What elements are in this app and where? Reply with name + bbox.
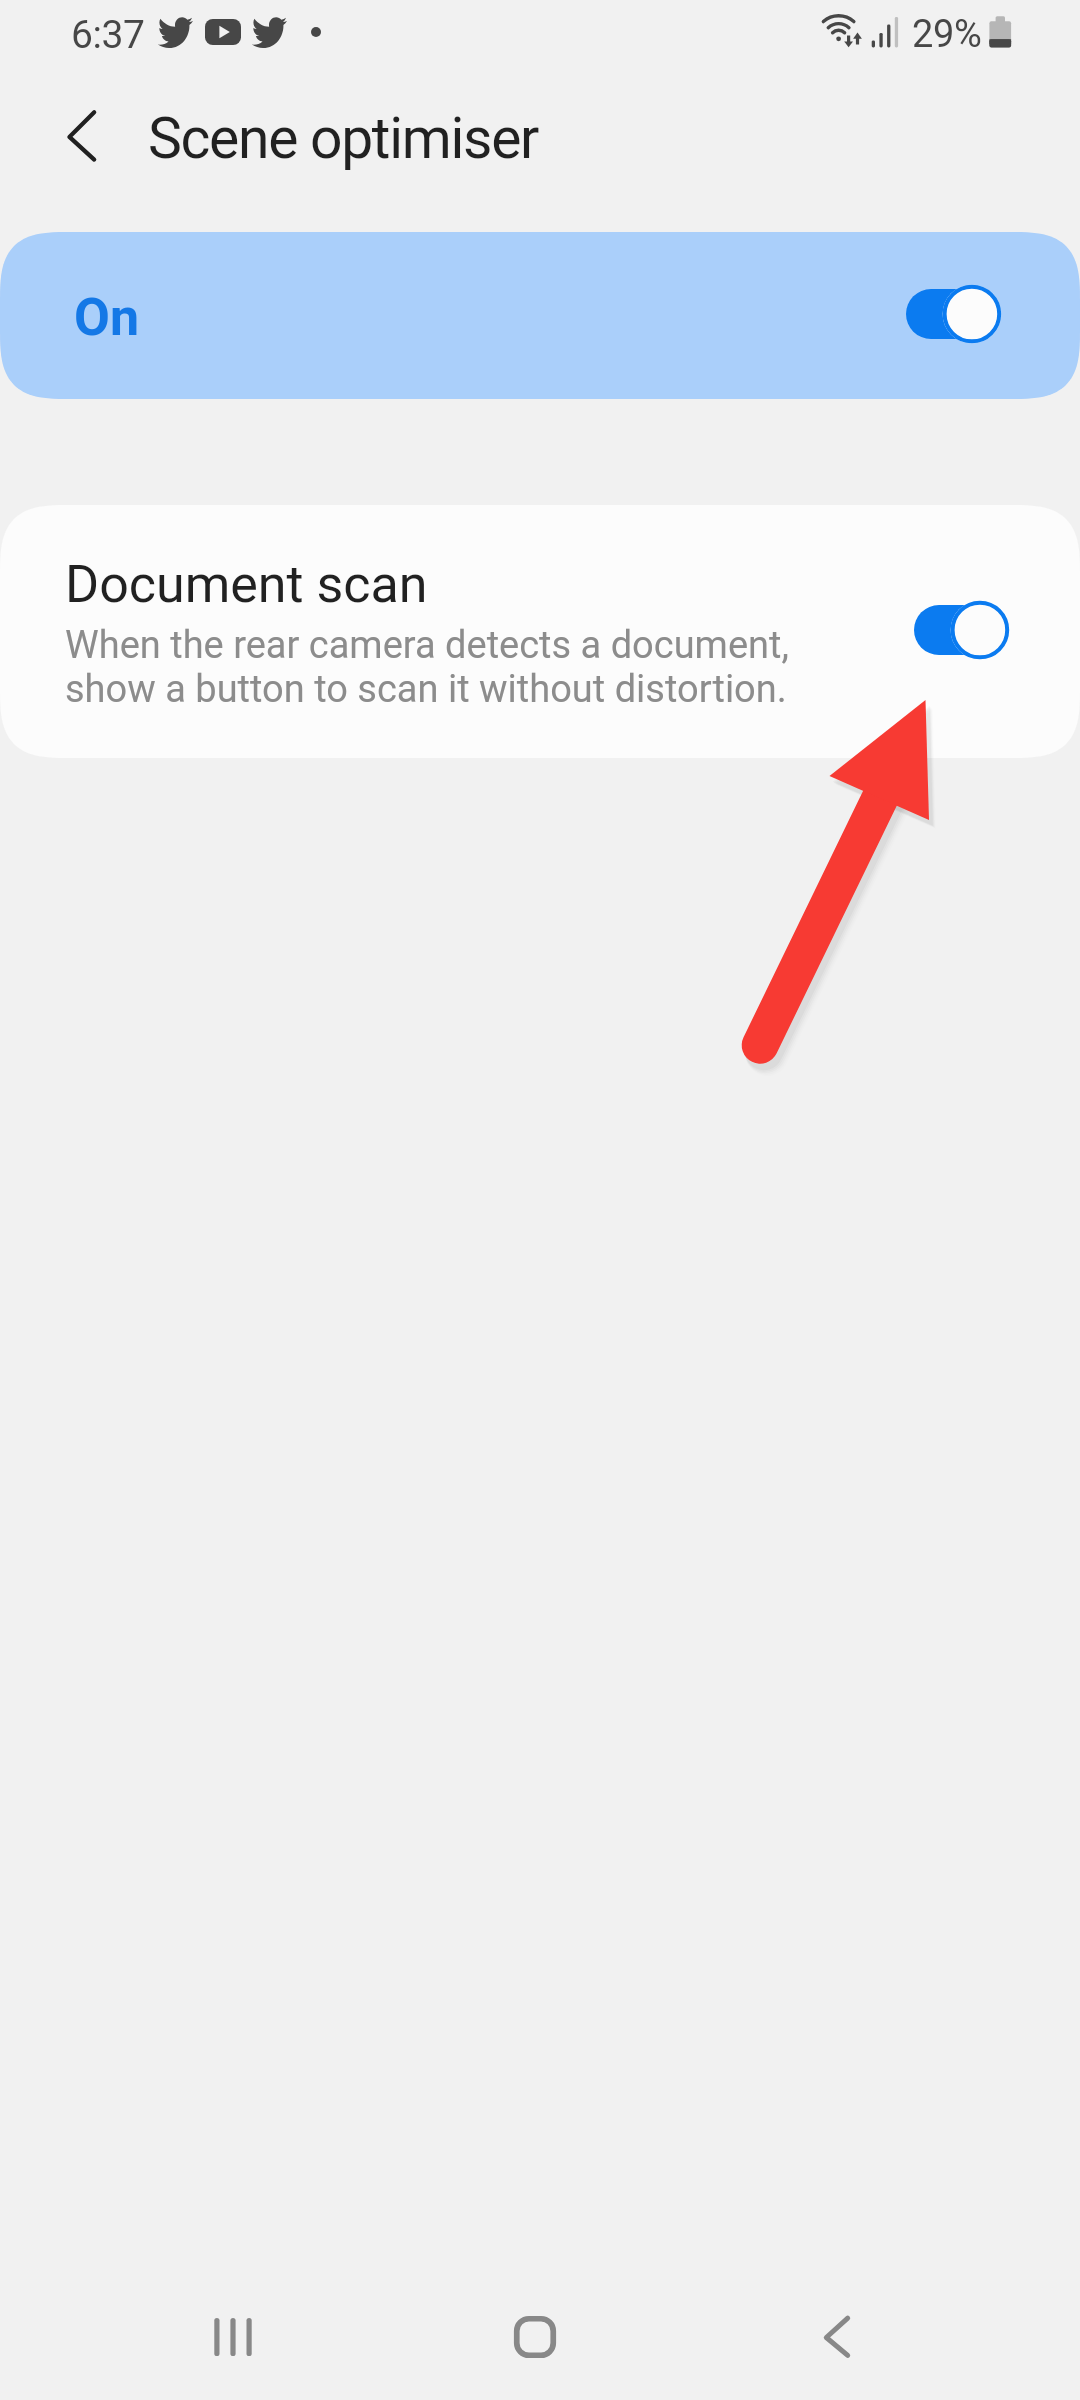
button[interactable]: Recents	[143, 2269, 323, 2400]
staticText: When the rear camera detects a document,…	[65, 623, 789, 711]
staticText: 29%	[912, 12, 982, 57]
button[interactable]: Home	[445, 2269, 625, 2400]
staticText: Document scan	[65, 554, 428, 615]
staticText: Scene optimiser	[148, 105, 539, 172]
button[interactable]: Navigate up	[34, 88, 130, 184]
button[interactable]: Back	[747, 2269, 927, 2400]
staticText: 6:37	[71, 12, 145, 58]
staticText: On	[74, 287, 140, 348]
button[interactable]: Document scan	[0, 505, 1080, 758]
button[interactable]: On	[0, 232, 1080, 399]
